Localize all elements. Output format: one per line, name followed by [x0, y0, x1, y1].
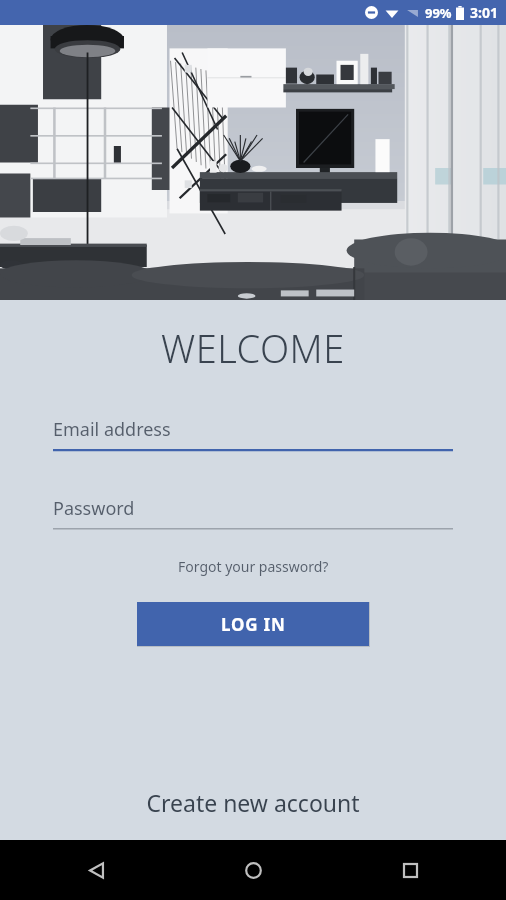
staticText: 3:01: [470, 3, 498, 22]
button[interactable]: Password: [53, 496, 453, 531]
staticText: Email address: [53, 417, 171, 442]
button[interactable]: Email address: [53, 417, 453, 452]
staticText: Forgot your password?: [178, 557, 329, 576]
button[interactable]: Back: [74, 848, 118, 892]
staticText: WELCOME: [161, 322, 345, 374]
staticText: LOG IN: [221, 613, 286, 636]
staticText: Create new account: [146, 787, 360, 818]
staticText: 99%: [425, 4, 452, 22]
button[interactable]: Recent apps: [388, 848, 432, 892]
button[interactable]: LOG IN: [137, 602, 369, 646]
button[interactable]: Create new account: [0, 777, 506, 840]
staticText: Password: [53, 496, 135, 521]
button[interactable]: Forgot your password?: [168, 553, 339, 580]
button[interactable]: Home: [231, 848, 275, 892]
